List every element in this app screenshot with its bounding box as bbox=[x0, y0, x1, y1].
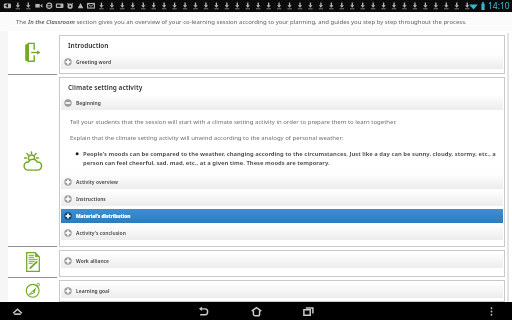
staticText: The In the Classroom section gives you a… bbox=[16, 18, 467, 26]
staticText: Activity overview bbox=[76, 179, 119, 186]
staticText: Learning goal bbox=[76, 288, 110, 295]
staticText: Explain that the climate setting activit… bbox=[70, 134, 344, 142]
staticText: Material's distribution bbox=[76, 213, 131, 220]
staticText: People's moods can be compared to the we… bbox=[83, 150, 498, 166]
button[interactable]: Beginning bbox=[61, 96, 503, 110]
button[interactable]: Learning goal bbox=[61, 284, 503, 298]
button[interactable]: Material's distribution bbox=[61, 209, 503, 223]
staticText: Work alliance bbox=[76, 258, 110, 265]
staticText: Instructions bbox=[76, 196, 106, 203]
button[interactable]: Introduction bbox=[8, 31, 57, 74]
staticText: Beginning bbox=[76, 100, 101, 107]
button[interactable]: Activity overview bbox=[61, 175, 503, 189]
button[interactable]: Learning goal bbox=[8, 278, 57, 302]
staticText: Activity's conclusion bbox=[76, 230, 126, 237]
staticText: Introduction bbox=[68, 41, 109, 50]
staticText: Tell your students that the session will… bbox=[70, 118, 397, 126]
button[interactable]: Work alliance bbox=[8, 247, 57, 277]
button[interactable]: Recent apps bbox=[298, 302, 318, 320]
button[interactable]: Instructions bbox=[61, 192, 503, 206]
button[interactable]: Greeting word bbox=[61, 55, 503, 69]
staticText: Climate setting activity bbox=[68, 83, 143, 92]
button[interactable]: Home bbox=[246, 302, 266, 320]
button[interactable]: More options bbox=[484, 302, 498, 320]
button[interactable]: Activity's conclusion bbox=[61, 226, 503, 240]
button[interactable]: Work alliance bbox=[61, 254, 503, 268]
button[interactable]: Climate setting activity bbox=[8, 75, 57, 246]
button[interactable]: Hide keyboard bbox=[7, 302, 27, 320]
button[interactable]: Back bbox=[193, 302, 213, 320]
staticText: 14:10 bbox=[488, 0, 510, 12]
staticText: Greeting word bbox=[76, 59, 112, 66]
